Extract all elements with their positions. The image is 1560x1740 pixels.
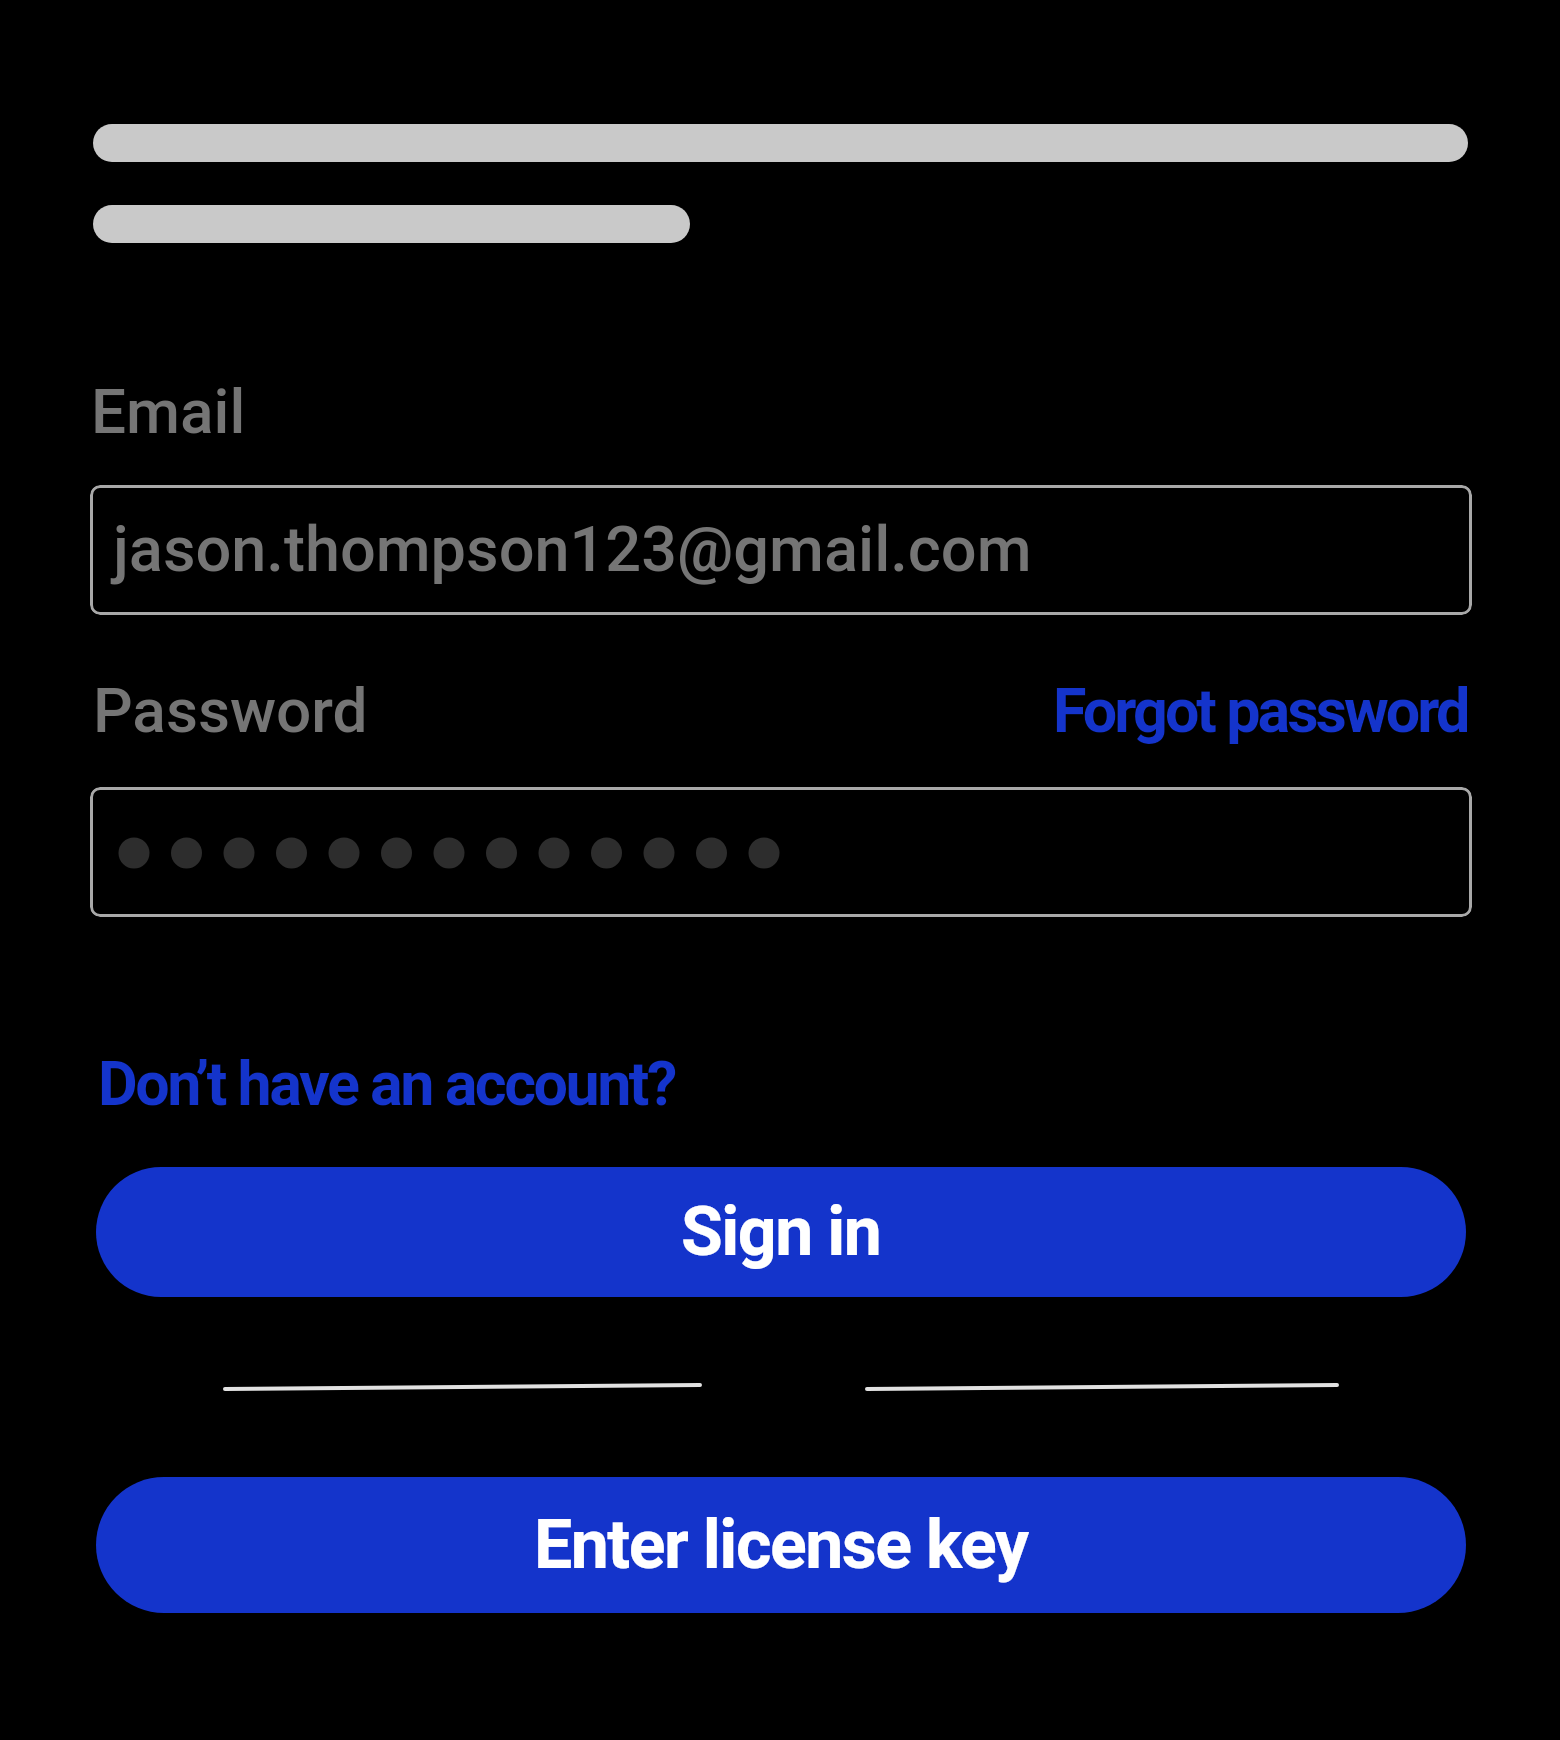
button[interactable]: Sign in [96, 1167, 1466, 1297]
staticText: Don’t have an account? [98, 1048, 675, 1119]
staticText: Forgot password [1053, 675, 1468, 746]
button[interactable] [90, 787, 1472, 917]
button[interactable]: Forgot password [1053, 675, 1468, 746]
button[interactable]: jason.thompson123@gmail.com [90, 485, 1472, 615]
button[interactable]: Don’t have an account? [98, 1048, 675, 1119]
staticText: Password [93, 674, 368, 747]
staticText: Sign in [681, 1192, 881, 1272]
button[interactable]: Enter license key [96, 1477, 1466, 1613]
staticText: Enter license key [534, 1505, 1028, 1585]
staticText: jason.thompson123@gmail.com [113, 513, 1032, 587]
staticText: Email [91, 375, 246, 448]
